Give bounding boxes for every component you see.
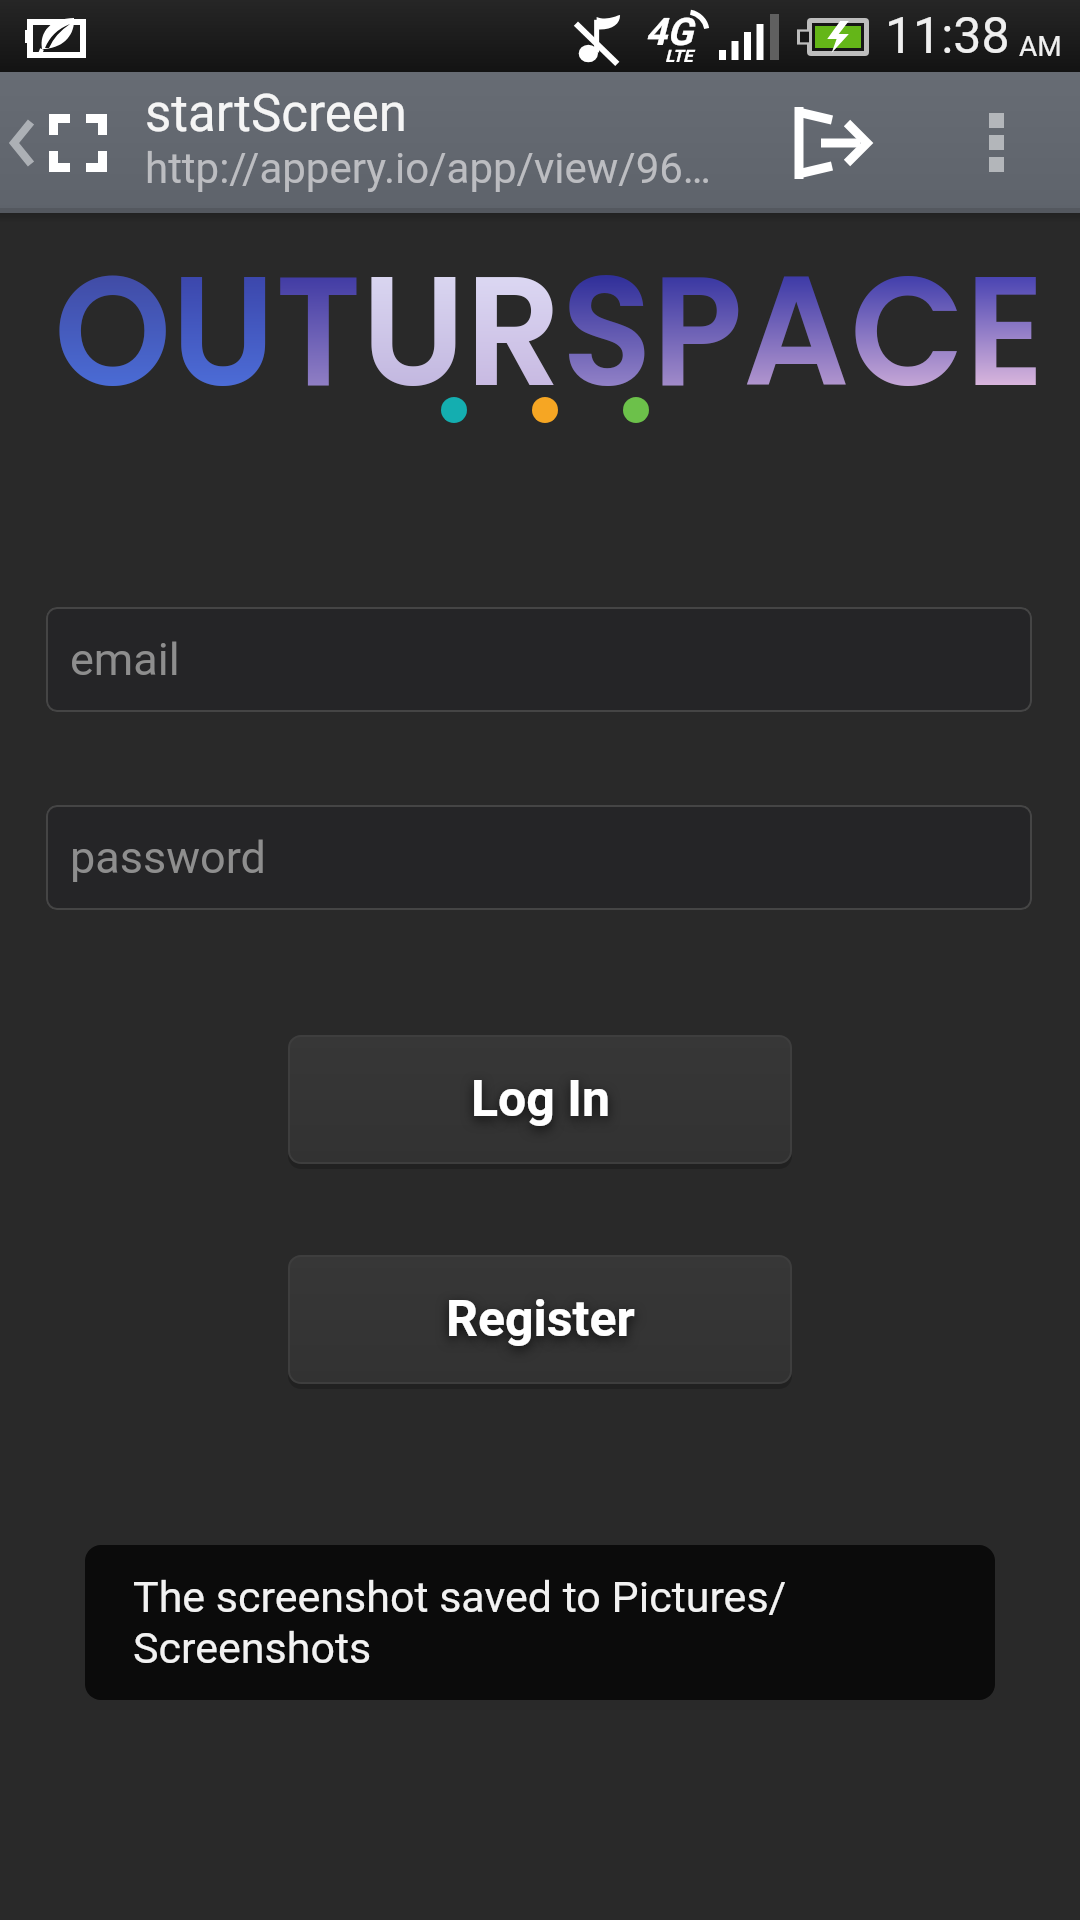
staticText: P bbox=[652, 223, 743, 439]
button[interactable]: password bbox=[46, 805, 1032, 910]
button[interactable] bbox=[989, 72, 1080, 213]
staticText: C bbox=[850, 223, 965, 439]
button[interactable]: Log In bbox=[288, 1035, 792, 1164]
staticText: 4G bbox=[645, 10, 693, 55]
staticText: 11:38 bbox=[885, 7, 1010, 66]
staticText: U bbox=[361, 223, 466, 439]
button[interactable]: Register bbox=[288, 1255, 792, 1384]
staticText: O bbox=[54, 223, 171, 439]
staticText: LTE bbox=[665, 46, 693, 66]
staticText: email bbox=[70, 633, 180, 686]
staticText: startScreen bbox=[145, 84, 407, 144]
staticText: E bbox=[965, 223, 1040, 439]
staticText: U bbox=[171, 223, 275, 439]
staticText: Register bbox=[446, 1290, 635, 1349]
staticText: The screenshot saved to Pictures/ Screen… bbox=[133, 1572, 787, 1674]
button[interactable]: email bbox=[46, 607, 1032, 712]
staticText: Log In bbox=[471, 1070, 610, 1129]
button[interactable] bbox=[0, 72, 107, 213]
staticText: http://appery.io/app/view/96… bbox=[145, 144, 711, 193]
staticText: T bbox=[276, 223, 362, 439]
staticText: AM bbox=[1019, 30, 1062, 63]
staticText: password bbox=[70, 831, 266, 884]
button[interactable] bbox=[794, 72, 870, 213]
staticText: R bbox=[466, 223, 561, 439]
staticText: S bbox=[561, 223, 652, 439]
staticText: A bbox=[743, 223, 850, 439]
